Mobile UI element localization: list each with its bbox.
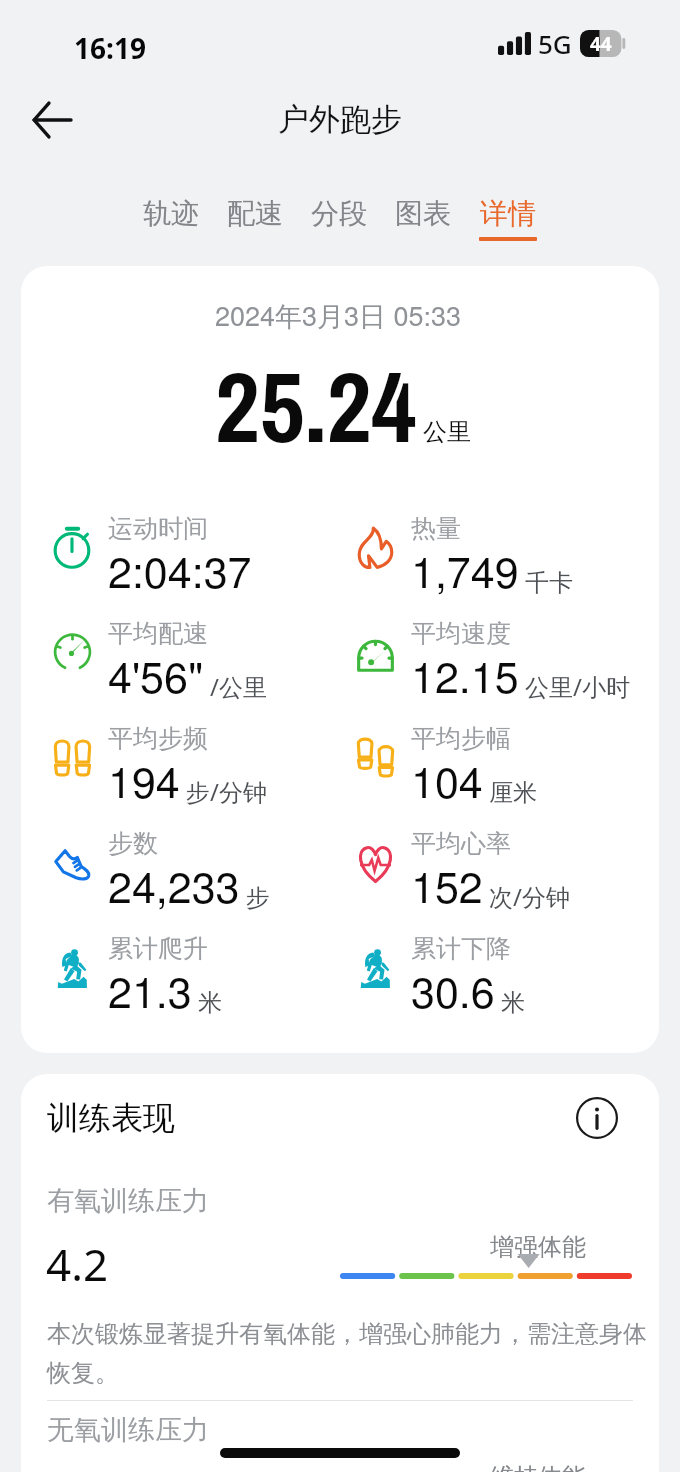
staticText: 21.3 — [108, 959, 192, 1021]
button[interactable]: 图表 — [381, 196, 465, 237]
staticText: 米 — [198, 988, 222, 1018]
staticText: 平均速度 — [411, 618, 511, 649]
staticText: 轨迹 — [143, 196, 199, 231]
staticText: 运动时间 — [108, 513, 208, 544]
staticText: 4.2 — [46, 1234, 109, 1294]
staticText: 详情 — [480, 196, 536, 231]
staticText: 12.15 — [411, 644, 519, 706]
staticText: 1,749 — [411, 539, 519, 601]
button[interactable]: Info — [569, 1090, 625, 1146]
button[interactable]: 配速 — [213, 196, 297, 237]
staticText: 步/分钟 — [186, 775, 267, 808]
staticText: 4'56" — [108, 644, 204, 706]
staticText: 平均心率 — [411, 828, 511, 859]
staticText: 152 — [411, 854, 483, 916]
staticText: 维持体能 — [490, 1462, 586, 1472]
staticText: 厘米 — [489, 778, 537, 808]
staticText: 户外跑步 — [0, 100, 680, 139]
button[interactable]: Back — [18, 86, 86, 154]
staticText: 2024年3月3日 05:33 — [21, 295, 657, 334]
staticText: 104 — [411, 749, 483, 811]
staticText: 2:04:37 — [108, 539, 252, 601]
staticText: 44 — [590, 31, 612, 57]
staticText: 增强体能 — [490, 1232, 586, 1262]
staticText: 公里 — [423, 417, 471, 447]
staticText: 步 — [246, 883, 270, 913]
staticText: 有氧训练压力 — [47, 1184, 209, 1218]
staticText: 次/分钟 — [489, 880, 570, 913]
button[interactable]: 分段 — [297, 196, 381, 237]
staticText: 无氧训练压力 — [47, 1413, 209, 1447]
staticText: 图表 — [395, 196, 451, 231]
staticText: 米 — [501, 988, 525, 1018]
staticText: 配速 — [227, 196, 283, 231]
staticText: 25.24 — [215, 341, 417, 473]
staticText: 平均步幅 — [411, 723, 511, 754]
staticText: 平均配速 — [108, 618, 208, 649]
button[interactable]: 轨迹 — [129, 196, 213, 237]
staticText: 5G — [538, 26, 572, 61]
staticText: 30.6 — [411, 959, 495, 1021]
staticText: 16:19 — [74, 29, 146, 67]
staticText: 累计爬升 — [108, 933, 208, 964]
staticText: 步数 — [108, 828, 158, 859]
staticText: 累计下降 — [411, 933, 511, 964]
staticText: 分段 — [311, 196, 367, 231]
staticText: 194 — [108, 749, 180, 811]
staticText: 本次锻炼显著提升有氧体能，增强心肺能力，需注意身体 恢复。 — [47, 1319, 647, 1388]
staticText: 千卡 — [525, 568, 573, 598]
button[interactable]: 详情 — [465, 196, 551, 241]
staticText: /公里 — [210, 670, 267, 703]
staticText: 24,233 — [108, 854, 240, 916]
staticText: 热量 — [411, 513, 461, 544]
staticText: 训练表现 — [47, 1098, 175, 1138]
staticText: 公里/小时 — [525, 670, 630, 703]
staticText: 平均步频 — [108, 723, 208, 754]
